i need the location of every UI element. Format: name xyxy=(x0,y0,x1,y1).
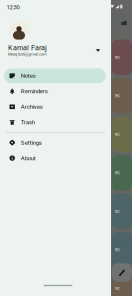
button[interactable]: Archives xyxy=(4,99,106,114)
staticText: rec. xyxy=(114,170,120,175)
staticText: Archives xyxy=(21,103,43,110)
staticText: kfaraj.test@gmail.com xyxy=(8,52,47,57)
staticText: rec. xyxy=(114,247,120,252)
button[interactable]: Kamal Faraj xyxy=(0,42,111,58)
button[interactable]: Reminders xyxy=(4,83,106,99)
staticText: Reminders xyxy=(21,88,48,95)
staticText: rec. xyxy=(114,55,120,60)
button[interactable]: New note xyxy=(112,263,132,282)
staticText: rec. xyxy=(114,132,120,137)
button[interactable]: Settings xyxy=(4,135,106,150)
button[interactable]: About xyxy=(4,150,106,166)
button[interactable]: Notes xyxy=(4,68,106,83)
button[interactable]: Trash xyxy=(4,114,106,130)
staticText: About xyxy=(21,155,36,162)
staticText: rec. xyxy=(114,286,120,291)
staticText: Kamal Faraj xyxy=(8,44,47,52)
staticText: rec. xyxy=(114,93,120,98)
button[interactable]: Account xyxy=(9,21,29,41)
staticText: Settings xyxy=(21,139,42,146)
staticText: rec. xyxy=(114,209,120,214)
staticText: 12:30 xyxy=(6,4,19,11)
staticText: Notes xyxy=(21,72,36,79)
staticText: Trash xyxy=(21,119,35,126)
